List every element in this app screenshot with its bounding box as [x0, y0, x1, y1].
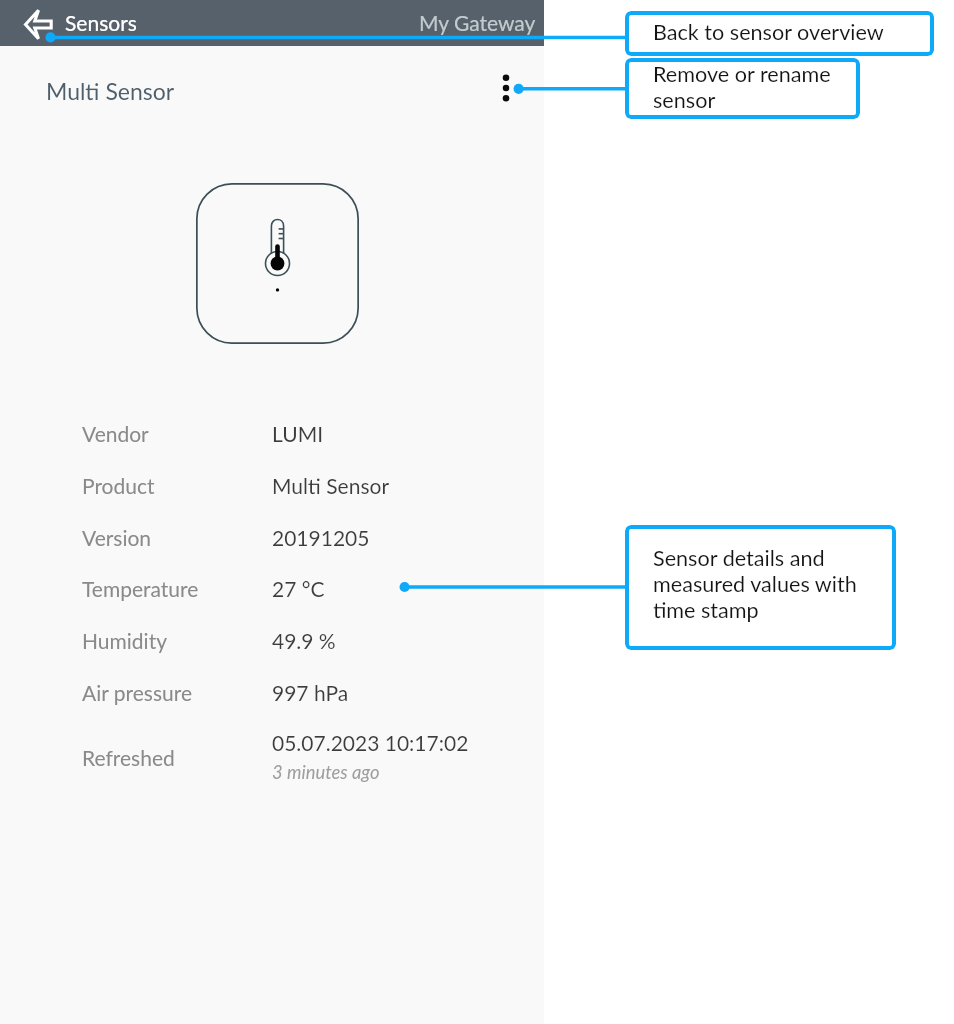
- staticText: Remove or rename: [653, 61, 831, 87]
- button[interactable]: Remove or rename sensor: [484, 66, 528, 110]
- staticText: time stamp: [653, 597, 759, 623]
- button[interactable]: Back to sensor overview: [0, 0, 62, 46]
- staticText: 27 °C: [272, 576, 325, 601]
- staticText: Temperature: [82, 576, 199, 601]
- staticText: 997 hPa: [272, 680, 349, 705]
- staticText: Back to sensor overview: [653, 19, 884, 45]
- staticText: LUMI: [272, 421, 324, 446]
- staticText: Vendor: [82, 421, 149, 446]
- staticText: 3 minutes ago: [272, 761, 380, 783]
- staticText: Sensors: [65, 10, 137, 35]
- staticText: Product: [82, 473, 155, 498]
- staticText: My Gateway: [419, 10, 536, 35]
- staticText: Humidity: [82, 628, 168, 653]
- staticText: Multi Sensor: [46, 77, 175, 105]
- staticText: Sensor details and: [653, 545, 825, 571]
- staticText: Multi Sensor: [272, 473, 390, 498]
- staticText: 20191205: [272, 525, 370, 550]
- staticText: 49.9 %: [272, 628, 336, 653]
- staticText: Refreshed: [82, 745, 175, 770]
- staticText: Version: [82, 525, 152, 550]
- staticText: measured values with: [653, 571, 857, 597]
- staticText: 05.07.2023 10:17:02: [272, 730, 469, 755]
- staticText: Air pressure: [82, 680, 193, 705]
- staticText: sensor: [653, 87, 716, 113]
